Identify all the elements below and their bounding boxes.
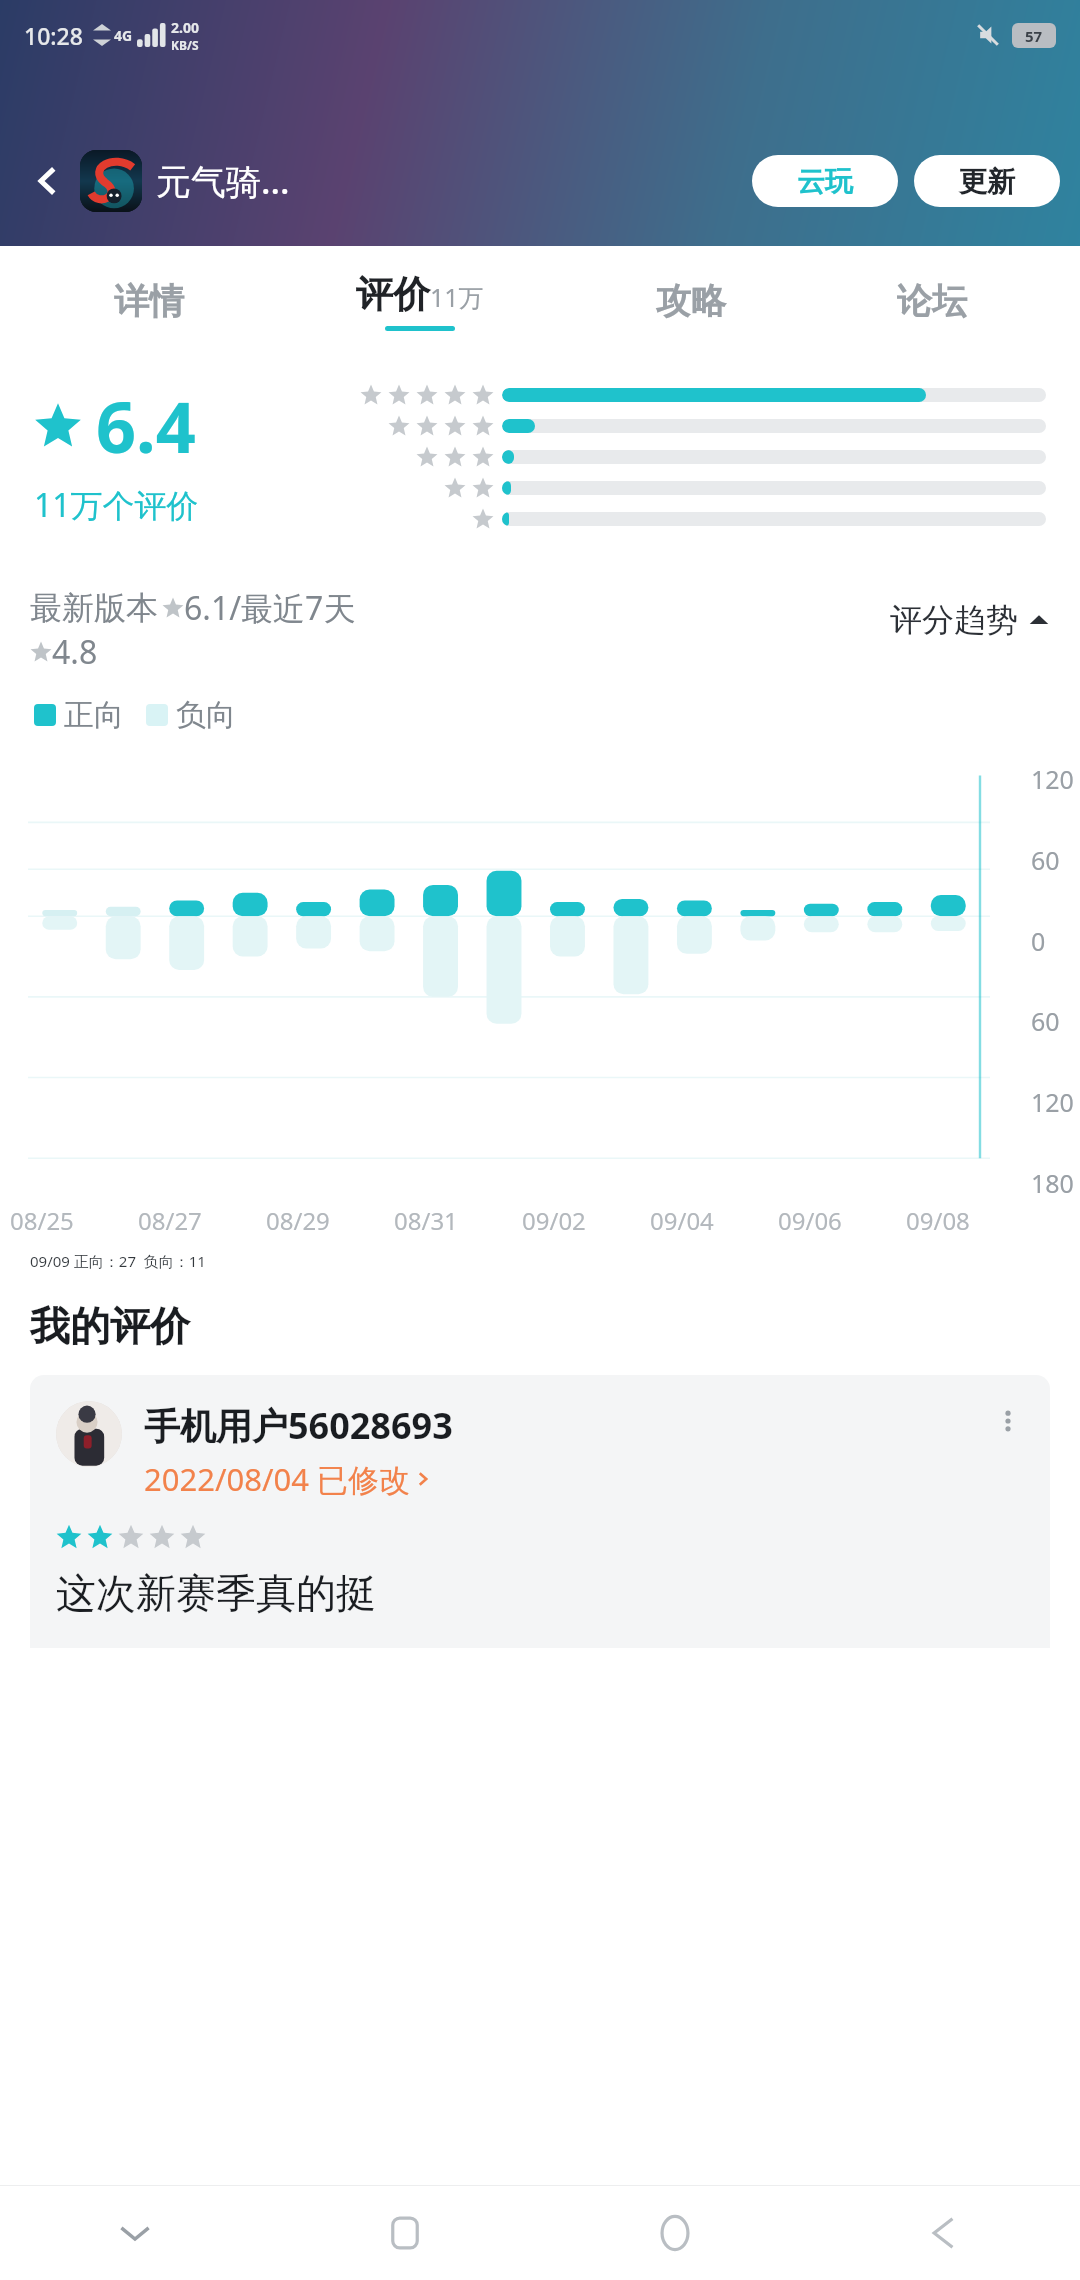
staticText: 60 xyxy=(1031,843,1060,877)
staticText: 57 xyxy=(1025,26,1043,46)
button[interactable]: 论坛 xyxy=(811,246,1052,356)
staticText: 120 xyxy=(1031,762,1074,796)
staticText: 10:28 xyxy=(24,20,83,51)
button[interactable]: Hide keyboard xyxy=(0,2186,270,2280)
staticText: 元气骑... xyxy=(156,157,290,205)
staticText: 120 xyxy=(1031,1085,1074,1119)
button[interactable]: 攻略 xyxy=(570,246,811,356)
button[interactable]: Recent apps xyxy=(270,2186,540,2280)
staticText: 0 xyxy=(1031,924,1046,958)
staticText: 手机用户56028693 xyxy=(144,1401,453,1450)
staticText: 4.8 xyxy=(52,630,98,674)
staticText: 09/06 xyxy=(778,1204,852,1237)
button[interactable]: 更新 xyxy=(914,155,1060,207)
button[interactable]: 评价 xyxy=(269,246,570,356)
button[interactable]: Back xyxy=(20,153,76,209)
staticText: 60 xyxy=(1031,1004,1060,1038)
staticText: 180 xyxy=(1031,1166,1074,1200)
staticText: 6.1/最近7天 xyxy=(184,586,356,630)
button[interactable]: 云玩 xyxy=(752,155,898,207)
staticText: 正向 xyxy=(64,696,124,734)
staticText: 11万个评价 xyxy=(34,483,199,527)
staticText: 08/29 xyxy=(266,1204,340,1237)
staticText: 08/25 xyxy=(10,1204,84,1237)
staticText: 负向 xyxy=(176,696,236,734)
staticText: 最新版本 xyxy=(30,588,158,628)
staticText: 评分趋势 xyxy=(890,600,1018,640)
staticText: 详情 xyxy=(114,279,184,323)
button[interactable]: Home xyxy=(540,2186,810,2280)
staticText: 评价 xyxy=(356,271,430,318)
staticText: 09/08 xyxy=(906,1204,980,1237)
button[interactable]: 评分趋势 xyxy=(890,600,1050,640)
staticText: KB/S xyxy=(171,37,199,53)
button[interactable]: 手机用户56028693 xyxy=(30,1375,1050,1648)
staticText: 论坛 xyxy=(897,279,967,323)
staticText: 08/27 xyxy=(138,1204,212,1237)
button[interactable]: More options xyxy=(988,1401,1028,1441)
staticText: 09/02 xyxy=(522,1204,596,1237)
staticText: 云玩 xyxy=(797,164,853,199)
staticText: 2022/08/04 已修改 xyxy=(144,1458,410,1500)
staticText: 更新 xyxy=(959,164,1015,199)
staticText: 09/09 正向：27 负向：11 xyxy=(30,1251,206,1271)
staticText: 6.4 xyxy=(96,378,196,473)
staticText: 我的评价 xyxy=(30,1301,190,1351)
button[interactable]: 详情 xyxy=(28,246,269,356)
staticText: 2.00 xyxy=(171,18,199,37)
staticText: 08/31 xyxy=(394,1204,468,1237)
staticText: 攻略 xyxy=(656,279,726,323)
staticText: 这次新赛季真的挺 xyxy=(56,1568,376,1618)
button[interactable]: Back xyxy=(810,2186,1080,2280)
staticText: 11万 xyxy=(430,280,484,314)
staticText: 4G xyxy=(114,26,133,45)
staticText: 09/04 xyxy=(650,1204,724,1237)
